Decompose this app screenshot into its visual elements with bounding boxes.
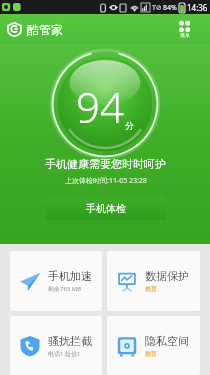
- button[interactable]: 隐私空间: [107, 316, 200, 375]
- staticText: 菜单: [180, 32, 190, 38]
- button[interactable]: 酷管家: [7, 22, 63, 37]
- staticText: 隐私空间: [145, 334, 189, 348]
- staticText: 分: [125, 120, 134, 131]
- button[interactable]: 骚扰拦截: [10, 316, 102, 375]
- staticText: 手机体检: [86, 202, 126, 215]
- staticText: 推荐: [145, 350, 157, 358]
- staticText: 94: [76, 78, 124, 135]
- button[interactable]: 菜单: [175, 19, 194, 40]
- staticText: T⊘: [152, 3, 162, 13]
- staticText: 手机加速: [48, 269, 92, 283]
- staticText: 剩余763 MB: [48, 285, 82, 293]
- button[interactable]: 手机加速: [10, 251, 102, 311]
- staticText: 推荐: [145, 285, 157, 293]
- staticText: 84%: [163, 3, 177, 13]
- staticText: 上次体检时间:11-05 23:28: [65, 176, 147, 186]
- button[interactable]: 手机体检: [46, 197, 166, 220]
- staticText: 酷管家: [27, 22, 63, 37]
- button[interactable]: 健康分数 94 分: [50, 49, 160, 159]
- staticText: 14:36: [187, 2, 208, 13]
- staticText: 手机健康需要您时时呵护: [45, 157, 166, 171]
- staticText: 数据保护: [145, 269, 189, 283]
- staticText: 电话1,短信1: [48, 350, 81, 358]
- button[interactable]: 数据保护: [107, 251, 200, 311]
- staticText: 骚扰拦截: [48, 334, 92, 348]
